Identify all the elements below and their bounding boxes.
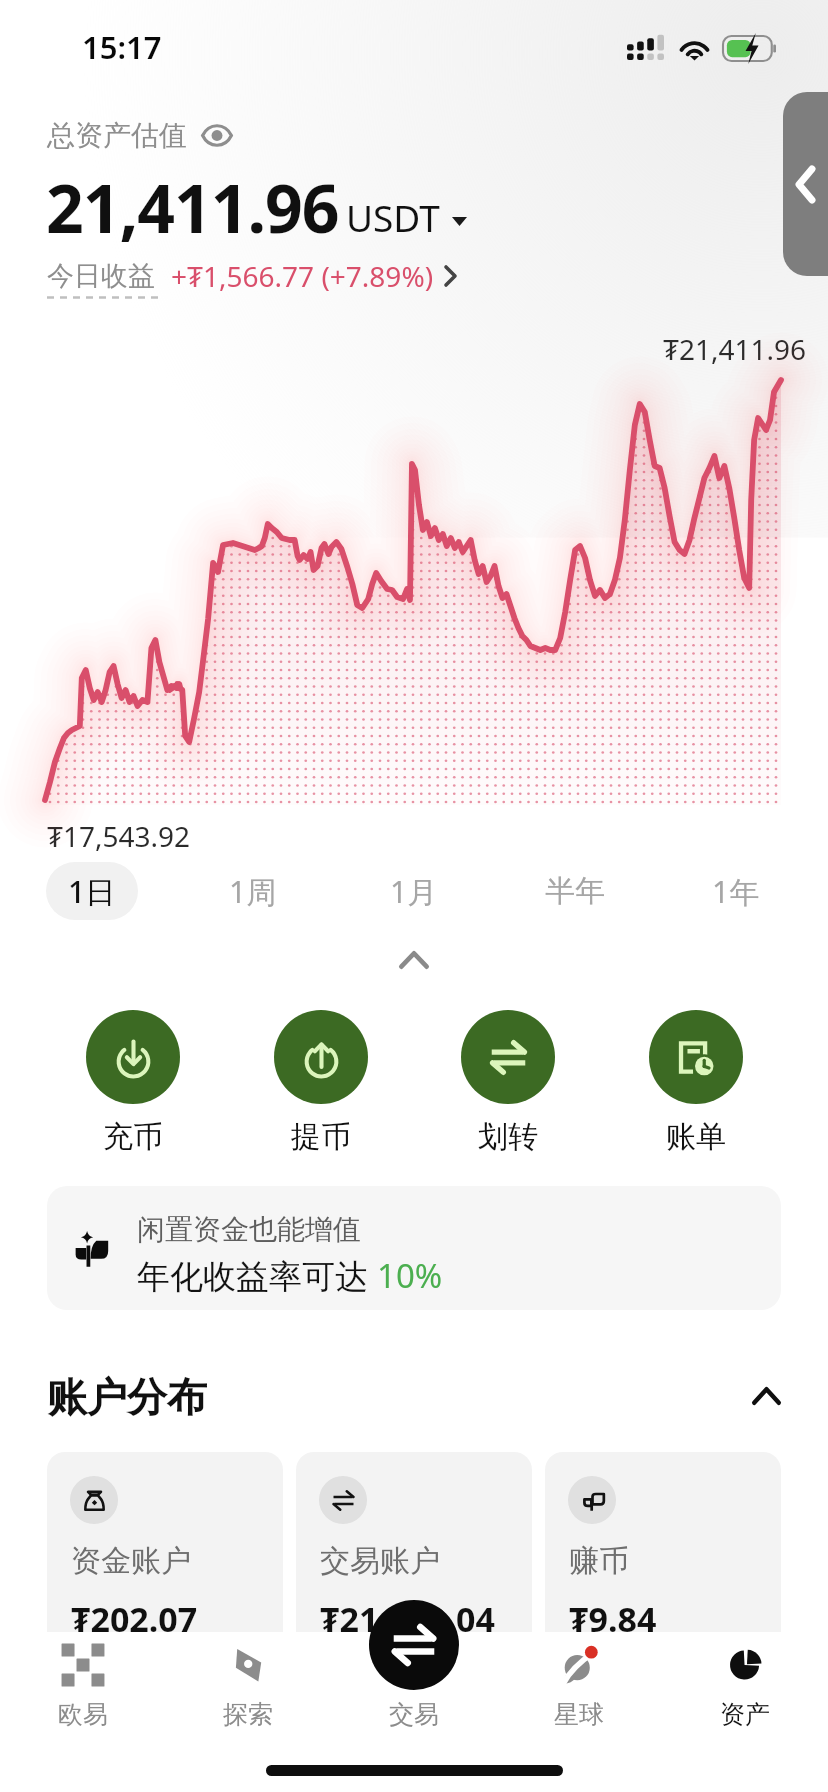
staticText: 1周 — [229, 871, 277, 912]
staticText: 1年 — [712, 871, 760, 912]
staticText: 闲置资金也能增值 — [137, 1212, 361, 1247]
staticText: 星球 — [554, 1699, 604, 1730]
staticText: 充币 — [103, 1118, 163, 1156]
button[interactable]: 充币 — [61, 1010, 205, 1156]
staticText: 10% — [377, 1253, 443, 1298]
button[interactable]: 账单 — [624, 1010, 768, 1156]
staticText: 账户分布 — [47, 1372, 207, 1420]
staticText: 年化收益率可达 — [137, 1253, 377, 1298]
staticText: 半年 — [545, 872, 605, 910]
staticText: 提币 — [291, 1118, 351, 1156]
button[interactable]: 闲置资金也能增值 — [47, 1186, 781, 1310]
button[interactable]: 1周 — [198, 862, 308, 920]
staticText: 账单 — [666, 1118, 726, 1156]
staticText: USDT — [346, 192, 440, 242]
button[interactable]: 交易 — [344, 1633, 484, 1741]
button[interactable]: 赚币 — [545, 1452, 781, 1672]
staticText: ₮21,199.04 — [320, 1596, 495, 1642]
button[interactable]: 交易账户 — [296, 1452, 532, 1672]
button[interactable]: 资金账户 — [47, 1452, 283, 1672]
staticText: 交易 — [389, 1699, 439, 1730]
button[interactable]: 欧易 — [13, 1633, 153, 1741]
button[interactable]: 今日收益 — [47, 257, 457, 295]
button[interactable]: USDT — [346, 192, 467, 242]
staticText: 15:17 — [82, 26, 162, 68]
staticText: 赚币 — [569, 1542, 629, 1580]
button[interactable]: 星球 — [509, 1633, 649, 1741]
staticText: 交易账户 — [320, 1542, 440, 1580]
staticText: 21,411.96 — [46, 162, 339, 252]
button[interactable]: 划转 — [436, 1010, 580, 1156]
staticText: ₮9.84 — [569, 1596, 657, 1642]
button[interactable]: 探索 — [178, 1633, 318, 1741]
button[interactable]: 资产 — [675, 1633, 815, 1741]
staticText: 资金账户 — [71, 1542, 191, 1580]
staticText: 资产 — [720, 1699, 770, 1730]
button[interactable]: 1月 — [359, 862, 469, 920]
staticText: ₮17,543.92 — [47, 817, 191, 855]
button[interactable]: Collapse chart — [374, 932, 454, 988]
staticText: 欧易 — [58, 1699, 108, 1730]
staticText: 今日收益 — [47, 259, 155, 293]
staticText: ₮21,411.96 — [663, 330, 807, 368]
button[interactable]: 账户分布 — [47, 1372, 781, 1420]
button[interactable]: 提币 — [249, 1010, 393, 1156]
button[interactable]: Toggle balance visibility — [199, 117, 235, 153]
staticText: 总资产估值 — [47, 118, 187, 153]
staticText: 1月 — [390, 871, 438, 912]
staticText: 划转 — [478, 1118, 538, 1156]
staticText: +₮1,566.77 (+7.89%) — [171, 257, 434, 295]
button[interactable]: Expand side panel — [783, 92, 828, 276]
button[interactable]: Trade — [369, 1600, 459, 1690]
staticText: 1日 — [68, 871, 116, 912]
staticText: 探索 — [223, 1699, 273, 1730]
button[interactable]: 1年 — [681, 862, 791, 920]
button[interactable]: 1日 — [46, 862, 138, 920]
button[interactable]: 半年 — [520, 862, 630, 920]
staticText: ₮202.07 — [71, 1596, 198, 1642]
